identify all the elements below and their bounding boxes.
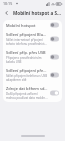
- button[interactable]: Vypnuto: [50, 54, 59, 60]
- button[interactable]: Zdroje dat během sdílení připojení: [3, 84, 62, 102]
- staticText: Připojeno prostřednictvím kabelu USB: [6, 56, 48, 64]
- staticText: Sdílení připojení Bluetooth: [6, 32, 48, 37]
- staticText: Sdílet připojení telefonu s USB adaptére…: [6, 74, 48, 82]
- staticText: 10:15: [3, 1, 13, 6]
- button[interactable]: Sdílení příp. přes USB: [3, 48, 62, 66]
- staticText: Sdílení připojení přes Ethernet: [6, 68, 48, 73]
- staticText: Sdílení příp. přes USB: [6, 50, 46, 55]
- staticText: Mobilní hotspot: [6, 23, 36, 28]
- staticText: Sdílet internetové připojení tohoto tele…: [6, 38, 48, 46]
- staticText: Mobilní hotspot a Sdílení přip.: [13, 10, 62, 16]
- button[interactable]: Vypnuto: [50, 22, 59, 28]
- staticText: Zdroje dat během sdílení připojení: [6, 86, 48, 91]
- button[interactable]: Zpět: [3, 9, 11, 17]
- button[interactable]: Mobilní hotspot: [3, 20, 62, 30]
- button[interactable]: Sdílení připojení Bluetooth: [3, 30, 62, 48]
- staticText: Další připojená zařízení mohou používat …: [6, 92, 48, 100]
- button[interactable]: Vypnuto: [50, 36, 59, 42]
- button[interactable]: Sdílení připojení přes Ethernet: [3, 66, 62, 84]
- button[interactable]: Vypnuto: [50, 72, 59, 78]
- button[interactable]: Zapnuto: [50, 90, 59, 96]
